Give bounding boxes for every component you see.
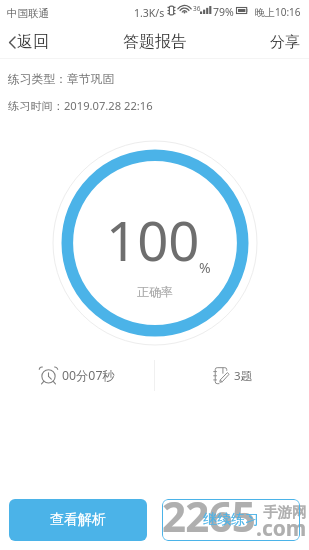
staticText: 继续练习 bbox=[203, 511, 259, 529]
staticText: 36 bbox=[193, 4, 201, 13]
staticText: 3题 bbox=[234, 368, 253, 384]
staticText: 中国联通 bbox=[7, 7, 49, 20]
staticText: 查看解析 bbox=[50, 511, 106, 529]
staticText: 1.3K/s bbox=[134, 6, 165, 20]
staticText: 分享 bbox=[270, 33, 300, 52]
staticText: 79% bbox=[213, 5, 234, 19]
button[interactable]: 查看解析 bbox=[9, 499, 147, 541]
staticText: 手游网 bbox=[263, 503, 307, 521]
staticText: 100 bbox=[106, 203, 200, 277]
button[interactable]: 返回 bbox=[0, 26, 61, 58]
staticText: 2265 bbox=[162, 487, 255, 544]
button[interactable]: 分享 bbox=[261, 27, 309, 58]
staticText: 练习时间：2019.07.28 22:16 bbox=[8, 98, 153, 113]
staticText: % bbox=[199, 258, 211, 277]
button[interactable]: 继续练习 bbox=[162, 499, 300, 541]
staticText: 返回 bbox=[17, 32, 49, 52]
staticText: 晚上10:16 bbox=[255, 5, 301, 19]
staticText: 练习类型：章节巩固 bbox=[8, 72, 115, 87]
staticText: .com bbox=[256, 514, 307, 543]
staticText: 00分07秒 bbox=[62, 367, 115, 384]
staticText: 正确率 bbox=[137, 284, 173, 299]
staticText: 答题报告 bbox=[123, 32, 187, 52]
